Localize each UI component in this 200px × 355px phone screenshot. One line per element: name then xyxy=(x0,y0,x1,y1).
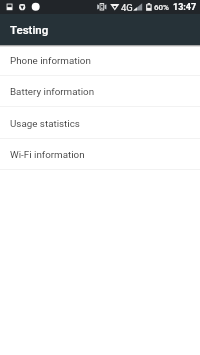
button[interactable]: Phone information xyxy=(0,45,200,76)
button[interactable]: Usage statistics xyxy=(0,108,200,139)
staticText: Phone information xyxy=(10,55,91,66)
staticText: 4G xyxy=(121,2,133,13)
staticText: 60% xyxy=(154,3,169,12)
button[interactable]: Battery information xyxy=(0,76,200,107)
staticText: Usage statistics xyxy=(10,118,80,129)
button[interactable]: Wi-Fi information xyxy=(0,139,200,170)
staticText: 13:47 xyxy=(173,2,197,13)
staticText: Wi-Fi information xyxy=(10,149,85,160)
staticText: Battery information xyxy=(10,86,95,97)
staticText: Testing xyxy=(10,23,49,36)
